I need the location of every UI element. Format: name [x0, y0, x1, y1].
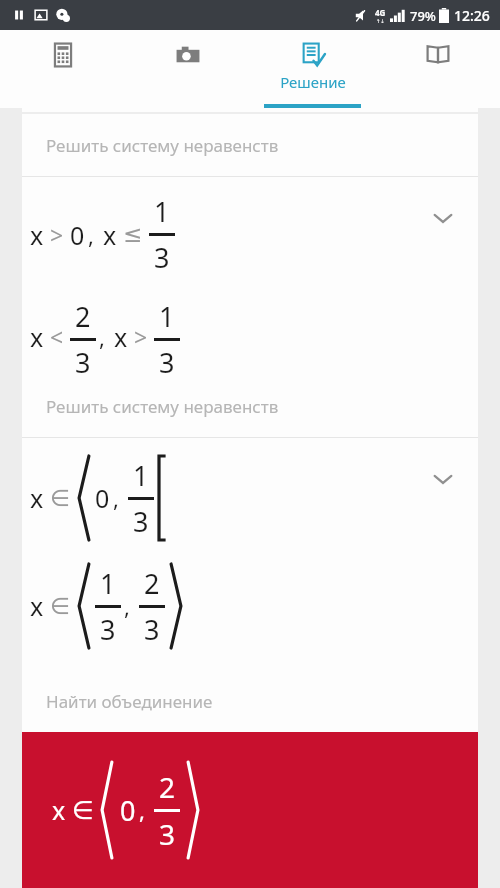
staticText: > — [50, 219, 64, 250]
button[interactable]: Решение — [250, 30, 375, 108]
staticText: 4G — [375, 7, 386, 18]
staticText: x — [114, 320, 128, 354]
staticText: 3 — [144, 611, 160, 648]
staticText: 3 — [159, 344, 175, 375]
staticText: x — [30, 218, 44, 252]
staticText: 1 — [154, 193, 170, 230]
staticText: 2 — [144, 565, 160, 602]
staticText: , — [99, 322, 105, 352]
staticText: 1 — [100, 565, 116, 602]
staticText: 1 — [133, 457, 149, 494]
staticText: < — [50, 321, 64, 352]
staticText: ≤ — [123, 221, 143, 248]
staticText: x — [30, 320, 44, 354]
staticText: ∈ — [72, 796, 94, 825]
staticText: 2 — [159, 768, 176, 806]
staticText: Решить систему неравенств — [46, 134, 279, 157]
staticText: , — [88, 220, 94, 250]
button[interactable]: Найти объединение — [22, 670, 478, 732]
staticText: x — [103, 218, 117, 252]
staticText: x — [30, 481, 44, 515]
button[interactable]: x — [22, 438, 478, 670]
staticText: , — [113, 483, 119, 513]
staticText: ∈ — [50, 485, 71, 512]
button[interactable]: Calculator — [0, 30, 125, 108]
button[interactable]: x — [22, 177, 478, 375]
button[interactable]: Expand step — [428, 203, 458, 233]
staticText: Решение — [280, 72, 346, 92]
staticText: 12:26 — [454, 6, 490, 25]
staticText: ↑↓ — [376, 18, 385, 24]
staticText: Решить систему неравенств — [46, 395, 279, 418]
staticText: 0 — [95, 481, 110, 515]
staticText: Найти объединение — [46, 690, 213, 713]
staticText: x — [30, 589, 44, 623]
staticText: 3 — [133, 503, 149, 540]
staticText: 2 — [75, 298, 91, 335]
button[interactable]: x — [22, 732, 478, 888]
staticText: 0 — [70, 218, 85, 252]
staticText: ∈ — [50, 593, 71, 620]
staticText: 3 — [154, 239, 170, 276]
staticText: , — [124, 591, 130, 621]
staticText: 0 — [120, 792, 136, 829]
button[interactable]: Camera — [125, 30, 250, 108]
staticText: , — [139, 795, 145, 825]
staticText: 1 — [159, 298, 175, 335]
button[interactable]: Book — [375, 30, 500, 108]
button[interactable]: Решить систему неравенств — [22, 114, 478, 176]
staticText: > — [134, 321, 148, 352]
staticText: 3 — [100, 611, 116, 648]
staticText: 3 — [159, 815, 176, 853]
button[interactable]: Решить систему неравенств — [22, 375, 478, 437]
button[interactable]: Expand step — [428, 464, 458, 494]
staticText: 3 — [75, 344, 91, 375]
staticText: 79% — [410, 7, 436, 25]
staticText: x — [52, 793, 66, 827]
